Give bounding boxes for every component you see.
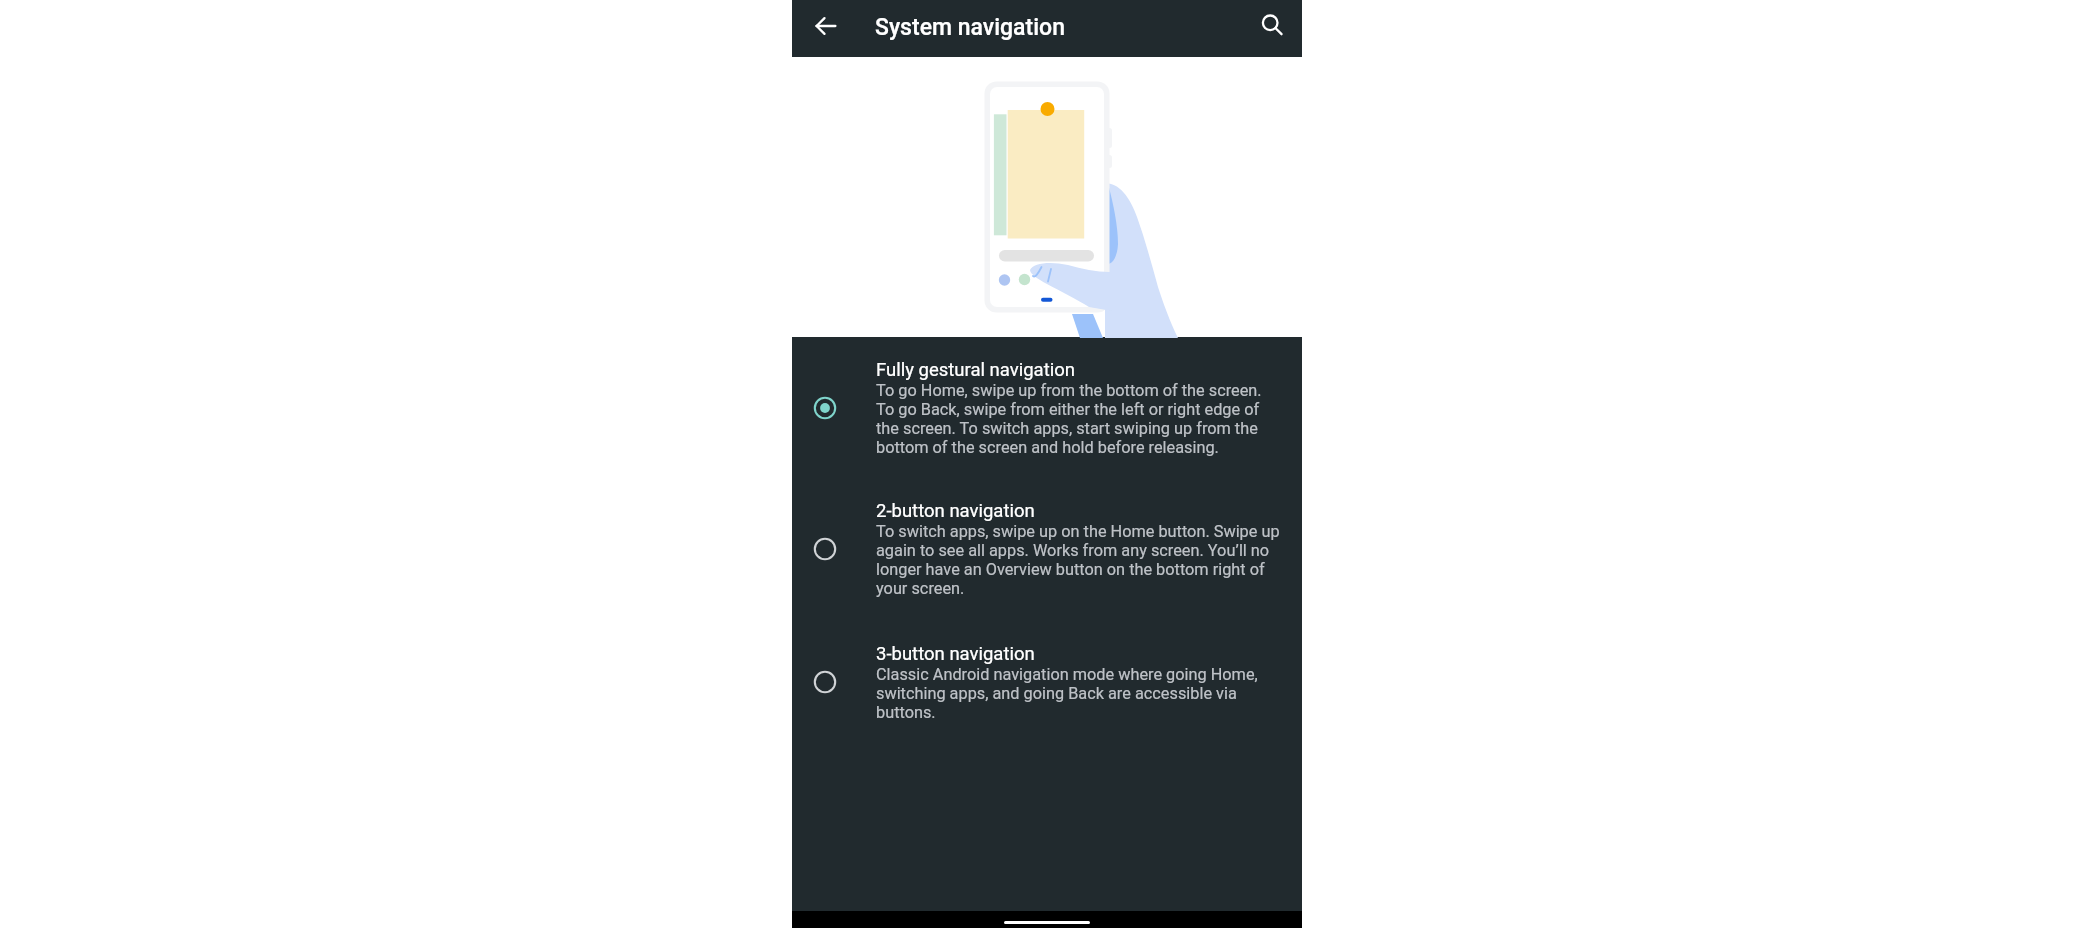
- staticText: Fully gestural navigation: [876, 357, 1075, 381]
- staticText: To switch apps, swipe up on the Home but…: [876, 522, 1281, 598]
- staticText: 2-button navigation: [876, 498, 1035, 522]
- button[interactable]: 2-button navigation: [792, 498, 1302, 624]
- button[interactable]: Fully gestural navigation: [792, 357, 1302, 483]
- staticText: System navigation: [875, 14, 1065, 41]
- staticText: To go Home, swipe up from the bottom of …: [876, 381, 1281, 457]
- button[interactable]: Search: [1252, 5, 1292, 45]
- button[interactable]: Navigate up: [806, 6, 846, 46]
- staticText: 3-button navigation: [876, 641, 1035, 665]
- button[interactable]: 3-button navigation: [792, 641, 1302, 767]
- staticText: Classic Android navigation mode where go…: [876, 665, 1281, 722]
